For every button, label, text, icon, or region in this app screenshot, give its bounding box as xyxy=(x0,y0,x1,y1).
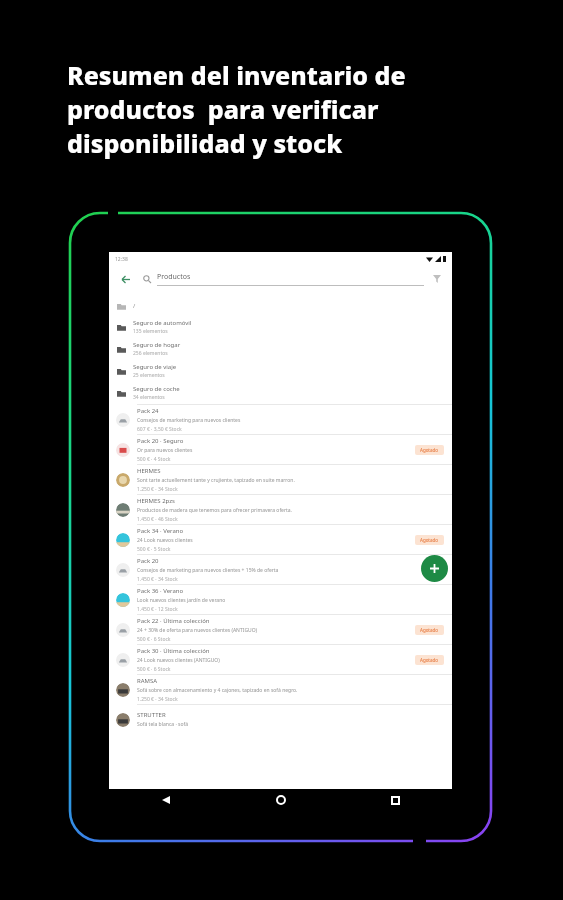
button[interactable]: Pack 34 · Verano xyxy=(109,525,452,554)
button[interactable]: Recent apps xyxy=(382,789,408,811)
button[interactable]: Seguro de hogar xyxy=(109,338,452,360)
staticText: Seguro de viaje xyxy=(133,363,177,371)
button[interactable]: Add product xyxy=(421,555,448,582)
staticText: Resumen del inventario de xyxy=(67,58,406,92)
button[interactable]: Home xyxy=(268,789,294,811)
staticText: Productos xyxy=(157,272,191,282)
staticText: HERMES xyxy=(137,467,161,475)
staticText: 256 elementos xyxy=(133,350,168,357)
staticText: Sofá tela blanca · sofá xyxy=(137,721,188,728)
button[interactable]: / xyxy=(109,296,452,316)
button[interactable]: STRUTTER xyxy=(109,705,452,734)
staticText: Seguro de coche xyxy=(133,385,180,393)
staticText: 500 € · 5 Stock xyxy=(137,546,171,553)
staticText: disponibilidad y stock xyxy=(67,126,343,160)
staticText: Seguro de automóvil xyxy=(133,319,192,327)
button[interactable]: HERMES xyxy=(109,465,452,494)
staticText: STRUTTER xyxy=(137,711,166,719)
staticText: Agotado xyxy=(420,627,439,633)
staticText: Pack 22 · Última colección xyxy=(137,617,210,625)
staticText: 24 Look nuevos clientes (ANTIGUO) xyxy=(137,657,220,664)
button[interactable]: Pack 30 · Última colección xyxy=(109,645,452,674)
staticText: 1.450 € · 12 Stock xyxy=(137,606,178,613)
button[interactable]: Seguro de automóvil xyxy=(109,316,452,338)
staticText: Sont tarte actuellement tante y crujient… xyxy=(137,477,295,484)
staticText: 1.250 € · 34 Stock xyxy=(137,696,178,703)
button[interactable]: Back xyxy=(117,271,133,287)
staticText: Consejos de marketing para nuevos client… xyxy=(137,417,241,424)
staticText: Pack 34 · Verano xyxy=(137,527,184,535)
button[interactable]: Seguro de coche xyxy=(109,382,452,404)
button[interactable]: Back xyxy=(153,789,179,811)
button[interactable]: Seguro de viaje xyxy=(109,360,452,382)
staticText: 607 € · 3,50 € Stock xyxy=(137,426,182,433)
staticText: 500 € · 6 Stock xyxy=(137,636,171,643)
staticText: 34 elementos xyxy=(133,394,165,401)
button[interactable]: Pack 36 · Verano xyxy=(109,585,452,614)
staticText: Sofá sobre con almacenamiento y 4 cajone… xyxy=(137,687,298,694)
staticText: 12:38 xyxy=(115,256,128,263)
staticText: HERMES 2pzs xyxy=(137,497,175,505)
staticText: 135 elementos xyxy=(133,328,168,335)
staticText: productos para verificar xyxy=(67,92,379,126)
staticText: 25 elementos xyxy=(133,372,165,379)
staticText: Seguro de hogar xyxy=(133,341,181,349)
button[interactable]: HERMES 2pzs xyxy=(109,495,452,524)
button[interactable]: RAMSA xyxy=(109,675,452,704)
staticText: 500 € · 4 Stock xyxy=(137,456,171,463)
staticText: 500 € · 6 Stock xyxy=(137,666,171,673)
staticText: 1.250 € · 34 Stock xyxy=(137,486,178,493)
staticText: Pack 20 · Seguro xyxy=(137,437,184,445)
staticText: 1.450 € · 34 Stock xyxy=(137,576,178,583)
staticText: Agotado xyxy=(420,657,439,663)
staticText: Pack 30 · Última colección xyxy=(137,647,210,655)
staticText: Pack 20 xyxy=(137,557,159,565)
button[interactable]: Pack 22 · Última colección xyxy=(109,615,452,644)
staticText: RAMSA xyxy=(137,677,158,685)
button[interactable]: Pack 20 xyxy=(109,555,452,584)
staticText: Pack 24 xyxy=(137,407,159,415)
staticText: Consejos de marketing para nuevos client… xyxy=(137,567,279,574)
staticText: 24 Look nuevos clientes xyxy=(137,537,193,544)
staticText: / xyxy=(133,302,136,310)
staticText: Or para nuevos clientes xyxy=(137,447,193,454)
staticText: 1.450 € · 46 Stock xyxy=(137,516,178,523)
staticText: Agotado xyxy=(420,537,439,543)
button[interactable]: Filter xyxy=(430,272,444,286)
staticText: Look nuevos clientes jardín de verano xyxy=(137,597,226,604)
button[interactable]: Pack 24 xyxy=(109,405,452,434)
staticText: Pack 36 · Verano xyxy=(137,587,184,595)
button[interactable]: Pack 20 · Seguro xyxy=(109,435,452,464)
staticText: Agotado xyxy=(420,447,439,453)
staticText: Productos de madera que tenemos para ofr… xyxy=(137,507,292,514)
staticText: 24 + 30% de oferta para nuevos clientes … xyxy=(137,627,258,634)
